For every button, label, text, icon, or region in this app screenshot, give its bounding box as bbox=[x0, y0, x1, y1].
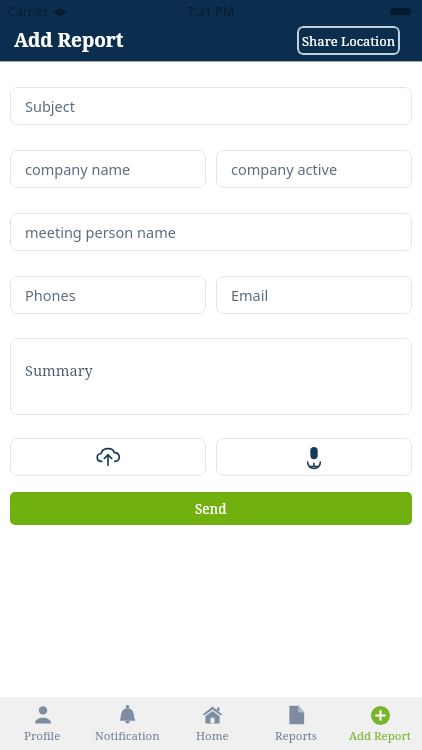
staticText: Carrier bbox=[8, 3, 49, 20]
staticText: meeting person name bbox=[25, 222, 176, 242]
button[interactable]: Share Location bbox=[297, 26, 400, 55]
button[interactable]: Summary bbox=[10, 338, 412, 415]
staticText: Add Report bbox=[349, 728, 411, 744]
staticText: 7:31 PM bbox=[187, 3, 235, 20]
staticText: Share Location bbox=[302, 32, 396, 50]
staticText: Home bbox=[196, 728, 229, 744]
staticText: Subject bbox=[25, 96, 75, 116]
button[interactable]: Reports bbox=[254, 697, 338, 750]
button[interactable]: Notification bbox=[85, 697, 170, 750]
button[interactable]: Profile bbox=[0, 697, 85, 750]
staticText: Send bbox=[195, 500, 227, 518]
button[interactable]: Record voice bbox=[216, 438, 412, 476]
staticText: Reports bbox=[275, 728, 318, 744]
staticText: Summary bbox=[25, 360, 93, 380]
staticText: company name bbox=[25, 159, 131, 179]
button[interactable]: company name bbox=[10, 150, 206, 188]
staticText: Add Report bbox=[14, 27, 124, 53]
staticText: Notification bbox=[95, 728, 160, 744]
button[interactable]: Upload file bbox=[10, 438, 206, 476]
staticText: Email bbox=[231, 285, 269, 305]
button[interactable]: meeting person name bbox=[10, 213, 412, 251]
button[interactable]: Email bbox=[216, 276, 412, 314]
button[interactable]: Subject bbox=[10, 87, 412, 125]
button[interactable]: Send bbox=[10, 492, 412, 525]
button[interactable]: Home bbox=[170, 697, 254, 750]
staticText: company active bbox=[231, 159, 338, 179]
button[interactable]: company active bbox=[216, 150, 412, 188]
button[interactable]: Add Report bbox=[338, 697, 422, 750]
staticText: Profile bbox=[24, 728, 61, 744]
button[interactable]: Phones bbox=[10, 276, 206, 314]
staticText: Phones bbox=[25, 285, 76, 305]
